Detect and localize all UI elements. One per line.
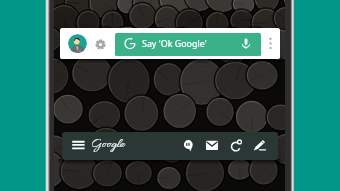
button[interactable]: Mail	[203, 137, 221, 155]
staticText: Google	[91, 136, 125, 153]
button[interactable]: Settings	[94, 38, 107, 51]
button[interactable]	[115, 33, 261, 56]
button[interactable]: Compose	[251, 137, 269, 155]
button[interactable]: Menu	[70, 137, 89, 154]
staticText: Say 'Ok Google'	[142, 37, 207, 49]
button[interactable]: Account	[68, 34, 87, 53]
button[interactable]: Photos	[227, 137, 245, 155]
button[interactable]: Hangouts	[181, 137, 199, 155]
button[interactable]: More options	[265, 34, 276, 53]
